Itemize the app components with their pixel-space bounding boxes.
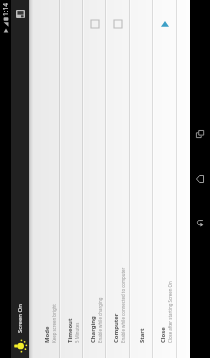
staticText: Computer: [112, 313, 120, 343]
staticText: Keep screen bright: [51, 304, 57, 343]
staticText: Start: [138, 328, 146, 343]
button[interactable]: Toggle Charging: [87, 16, 103, 32]
button[interactable]: Start: [131, 0, 152, 358]
button[interactable]: Back: [190, 213, 210, 235]
staticText: Mode: [43, 326, 51, 343]
staticText: Close after starting Screen On: [167, 281, 173, 343]
button[interactable]: Close: [154, 0, 176, 358]
button[interactable]: Computer: [107, 0, 129, 358]
staticText: Close: [159, 327, 167, 343]
button[interactable]: Charging: [84, 0, 105, 358]
staticText: Timeout: [66, 318, 74, 343]
button[interactable]: Recent apps: [190, 123, 210, 145]
button[interactable]: Mode: [38, 0, 59, 358]
button[interactable]: Start: [157, 16, 173, 32]
button[interactable]: Timeout: [61, 0, 82, 358]
button[interactable]: Options: [12, 6, 28, 22]
staticText: Charging: [89, 316, 97, 343]
staticText: 1:14: [1, 2, 10, 16]
staticText: Enable while connected to computer: [120, 267, 126, 343]
staticText: 5 Minutes: [74, 322, 80, 343]
staticText: Screen On: [16, 304, 24, 333]
staticText: Enable while charging: [97, 297, 103, 343]
button[interactable]: Home: [190, 168, 210, 190]
button[interactable]: Toggle Computer: [110, 16, 126, 32]
